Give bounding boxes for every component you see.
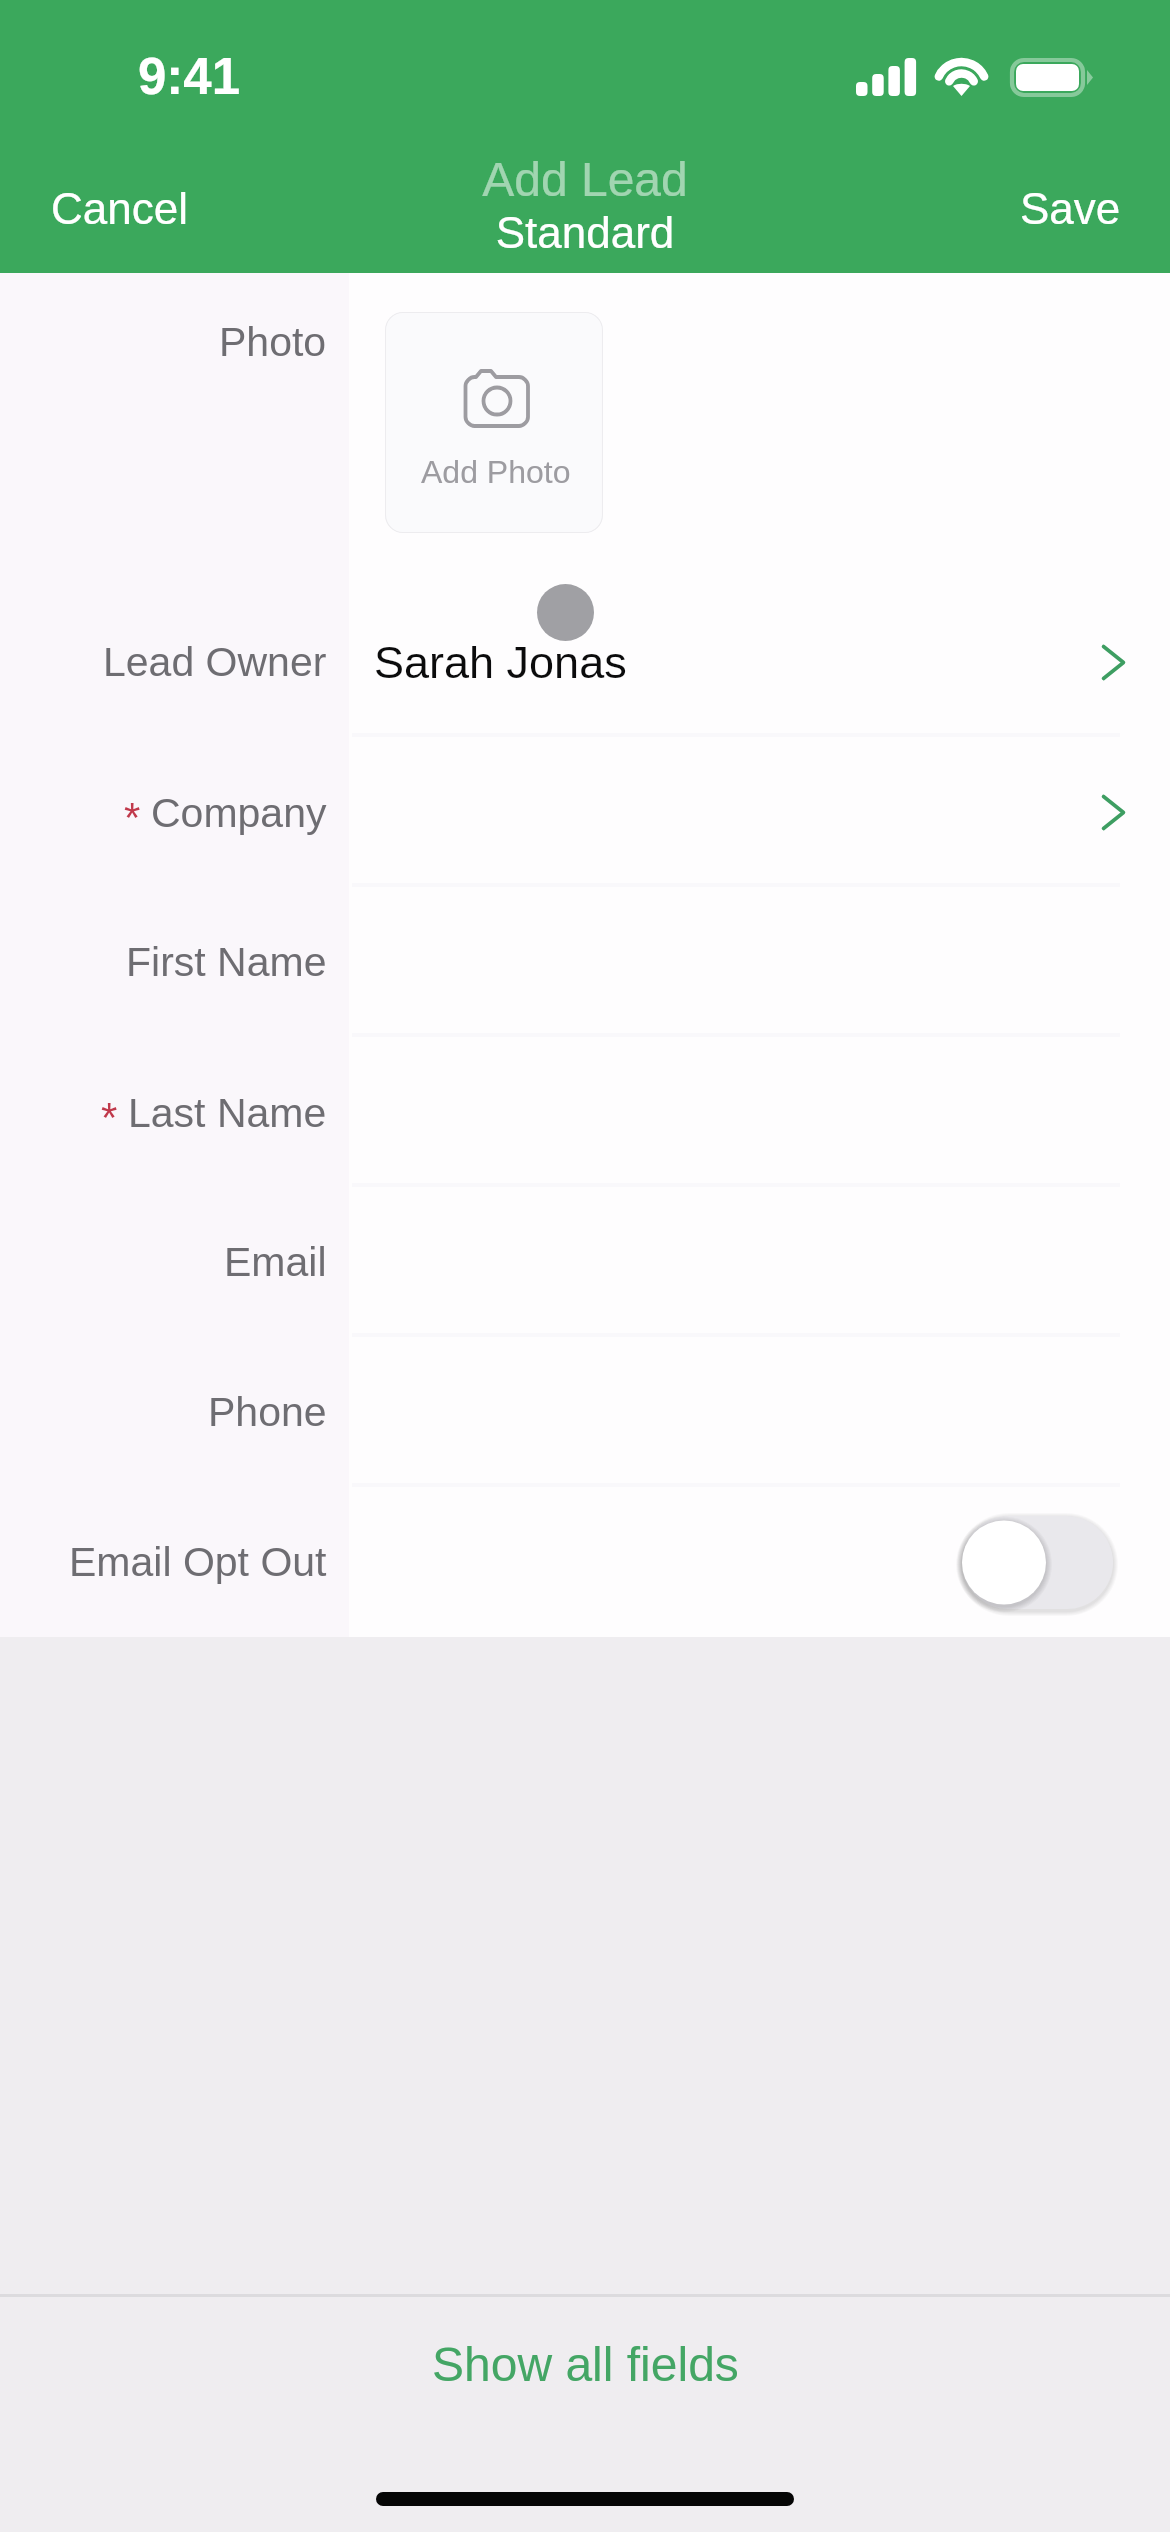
staticText: Show all fields	[432, 2338, 739, 2392]
button[interactable]: Lead Owner	[0, 587, 1170, 737]
staticText: Save	[1020, 184, 1121, 233]
staticText: Cancel	[51, 184, 188, 233]
staticText: Last Name	[128, 1090, 327, 1136]
staticText: Sarah Jonas	[374, 637, 627, 687]
button[interactable]: Email	[0, 1187, 1170, 1337]
button[interactable]: Add Photo	[385, 312, 603, 533]
staticText: *	[124, 794, 141, 841]
button[interactable]: Phone	[0, 1337, 1170, 1487]
button[interactable]: Email Opt Out toggle	[960, 1506, 1131, 1619]
staticText: Add Lead	[0, 153, 1170, 207]
staticText: Standard	[0, 208, 1170, 257]
button[interactable]: Cancel	[0, 162, 239, 254]
staticText: Email Opt Out	[69, 1539, 327, 1585]
button[interactable]: First Name	[0, 887, 1170, 1037]
button[interactable]: Save	[971, 162, 1170, 254]
other: Open Lead Owner	[1101, 644, 1126, 681]
staticText: Company	[151, 790, 327, 836]
staticText: 9:41	[138, 48, 241, 105]
other: Open Company	[1101, 794, 1126, 831]
staticText: Add Photo	[421, 454, 571, 490]
button[interactable]: Show all fields	[0, 2297, 1170, 2432]
button[interactable]: *	[0, 737, 1170, 887]
staticText: Lead Owner	[103, 639, 327, 685]
staticText: Photo	[219, 319, 327, 365]
staticText: First Name	[126, 939, 327, 985]
staticText: *	[101, 1094, 118, 1141]
button[interactable]: *	[0, 1037, 1170, 1187]
staticText: Email	[224, 1239, 327, 1285]
staticText: Phone	[208, 1389, 327, 1435]
button[interactable]: Email Opt Out	[0, 1487, 1170, 1637]
